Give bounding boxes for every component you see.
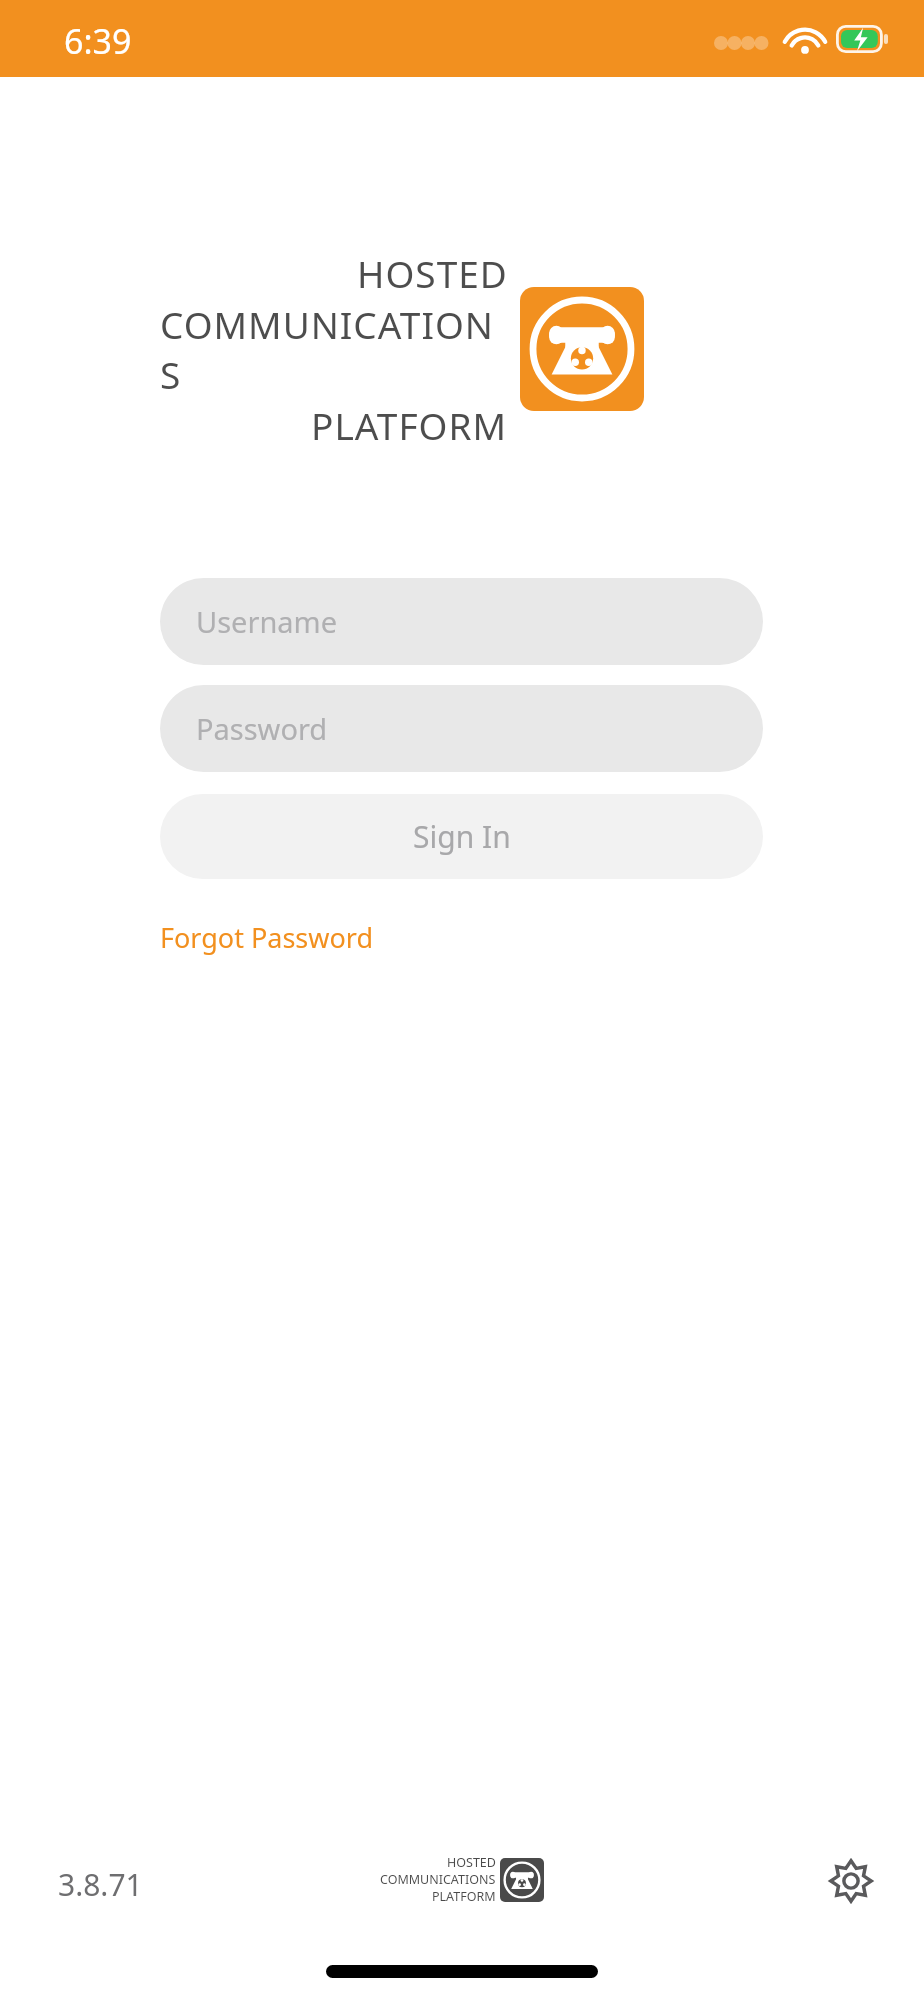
button[interactable]: Password [160,685,763,772]
staticText: Sign In [413,816,511,857]
staticText: Forgot Password [160,919,374,956]
staticText: HOSTED [447,1854,496,1871]
staticText: COMMUNICATIONS [160,299,508,399]
button[interactable]: Username [160,578,763,665]
button[interactable]: Settings [824,1854,878,1908]
button[interactable]: Sign In [160,794,763,879]
staticText: Password [196,709,328,748]
staticText: PLATFORM [432,1888,496,1905]
staticText: HOSTED [357,248,508,298]
staticText: PLATFORM [311,400,508,450]
staticText: Username [196,602,338,641]
button[interactable]: Forgot Password [160,919,374,956]
staticText: 3.8.71 [58,1864,143,1905]
staticText: 6:39 [64,18,132,64]
staticText: COMMUNICATIONS [380,1871,496,1888]
